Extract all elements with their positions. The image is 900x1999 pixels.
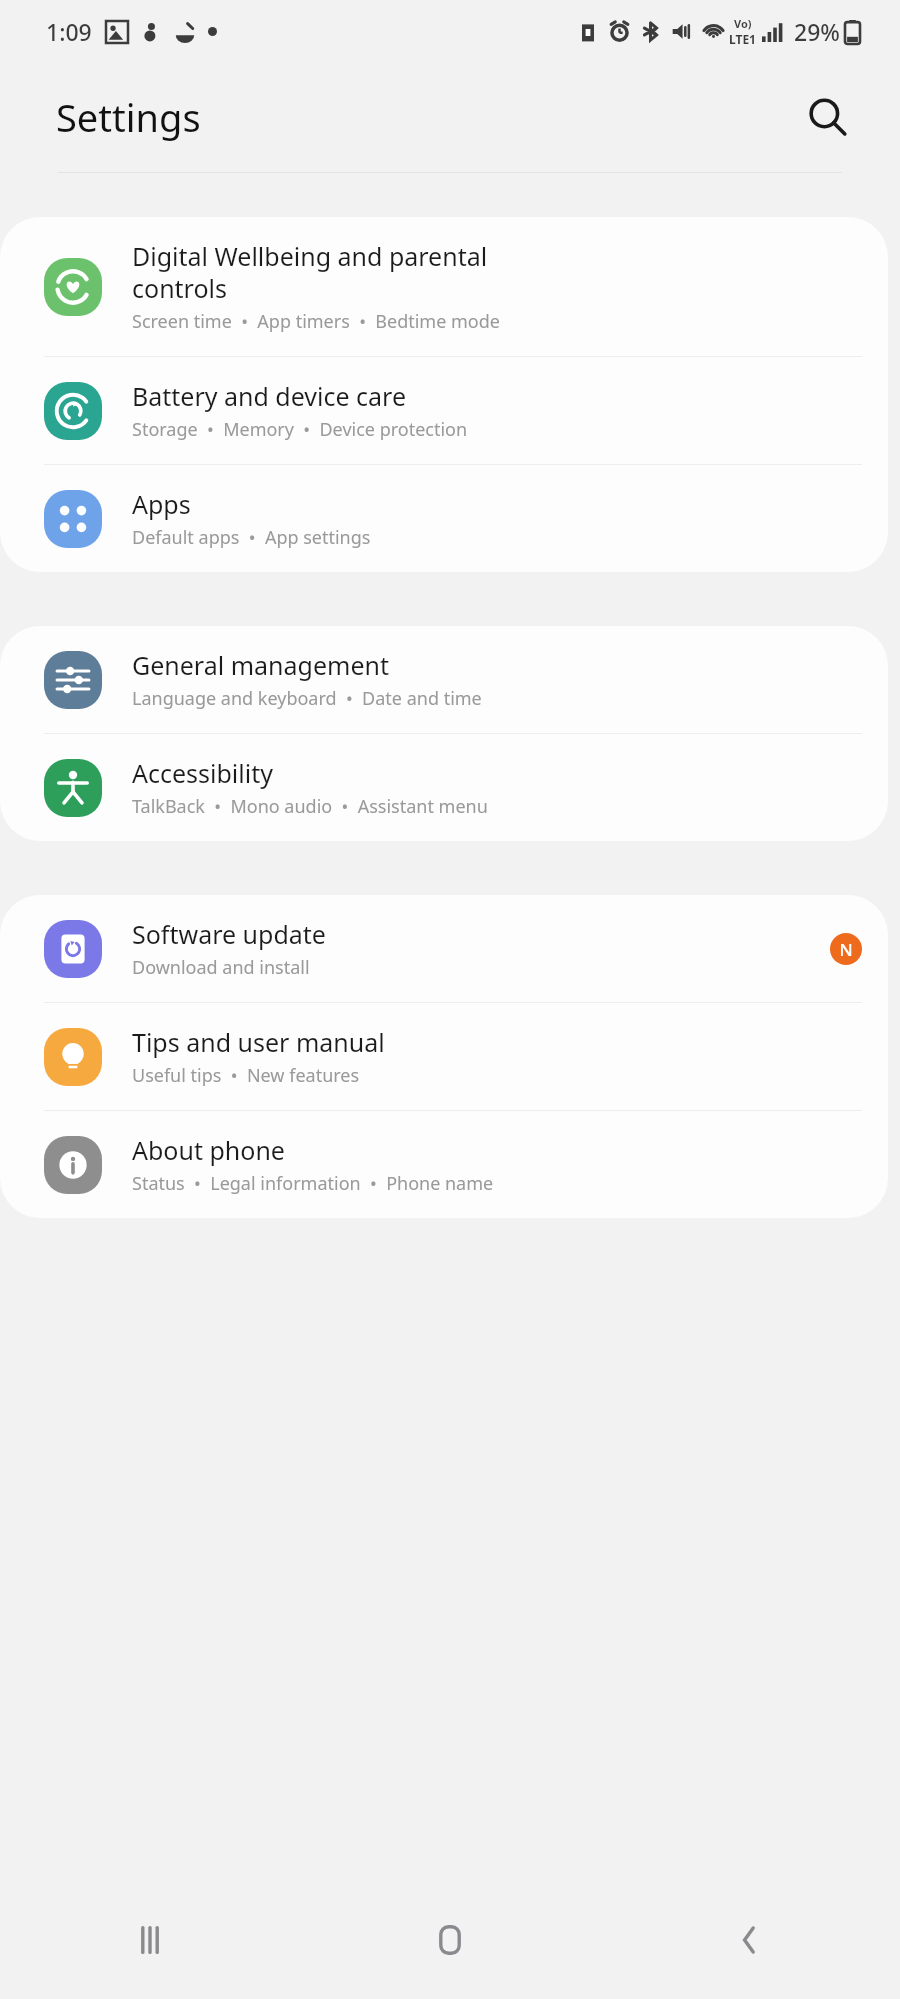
button[interactable]: Software update	[0, 895, 888, 1003]
staticText: Accessibility	[132, 756, 273, 790]
staticText: Digital Wellbeing and parental controls	[132, 239, 488, 305]
staticText: N	[839, 938, 853, 961]
staticText: Default apps • App settings	[132, 525, 371, 550]
staticText: Battery and device care	[132, 379, 407, 413]
button[interactable]: General management	[0, 626, 888, 734]
button[interactable]: Search	[798, 88, 856, 146]
staticText: TalkBack • Mono audio • Assistant menu	[132, 794, 488, 819]
staticText: Screen time • App timers • Bedtime mode	[132, 309, 500, 334]
staticText: Storage • Memory • Device protection	[132, 417, 468, 442]
staticText: Tips and user manual	[132, 1025, 385, 1059]
button[interactable]: Back	[600, 1880, 900, 1999]
button[interactable]: Digital Wellbeing and parental controls	[0, 217, 888, 357]
button[interactable]: Apps	[0, 465, 888, 572]
staticText: LTE1	[729, 31, 756, 47]
staticText: Download and install	[132, 955, 310, 980]
staticText: About phone	[132, 1133, 285, 1167]
staticText: Settings	[56, 91, 201, 143]
button[interactable]: Home	[300, 1880, 600, 1999]
staticText: Apps	[132, 487, 191, 521]
staticText: Status • Legal information • Phone name	[132, 1171, 494, 1196]
staticText: Vo)	[734, 16, 752, 31]
staticText: Language and keyboard • Date and time	[132, 686, 482, 711]
button[interactable]: Accessibility	[0, 734, 888, 841]
button[interactable]: About phone	[0, 1111, 888, 1218]
staticText: Useful tips • New features	[132, 1063, 360, 1088]
button[interactable]: Tips and user manual	[0, 1003, 888, 1111]
staticText: General management	[132, 648, 389, 682]
staticText: 29%	[794, 16, 840, 47]
staticText: Software update	[132, 917, 326, 951]
button[interactable]: Recent apps	[0, 1880, 300, 1999]
staticText: 1:09	[46, 16, 92, 47]
button[interactable]: Battery and device care	[0, 357, 888, 465]
